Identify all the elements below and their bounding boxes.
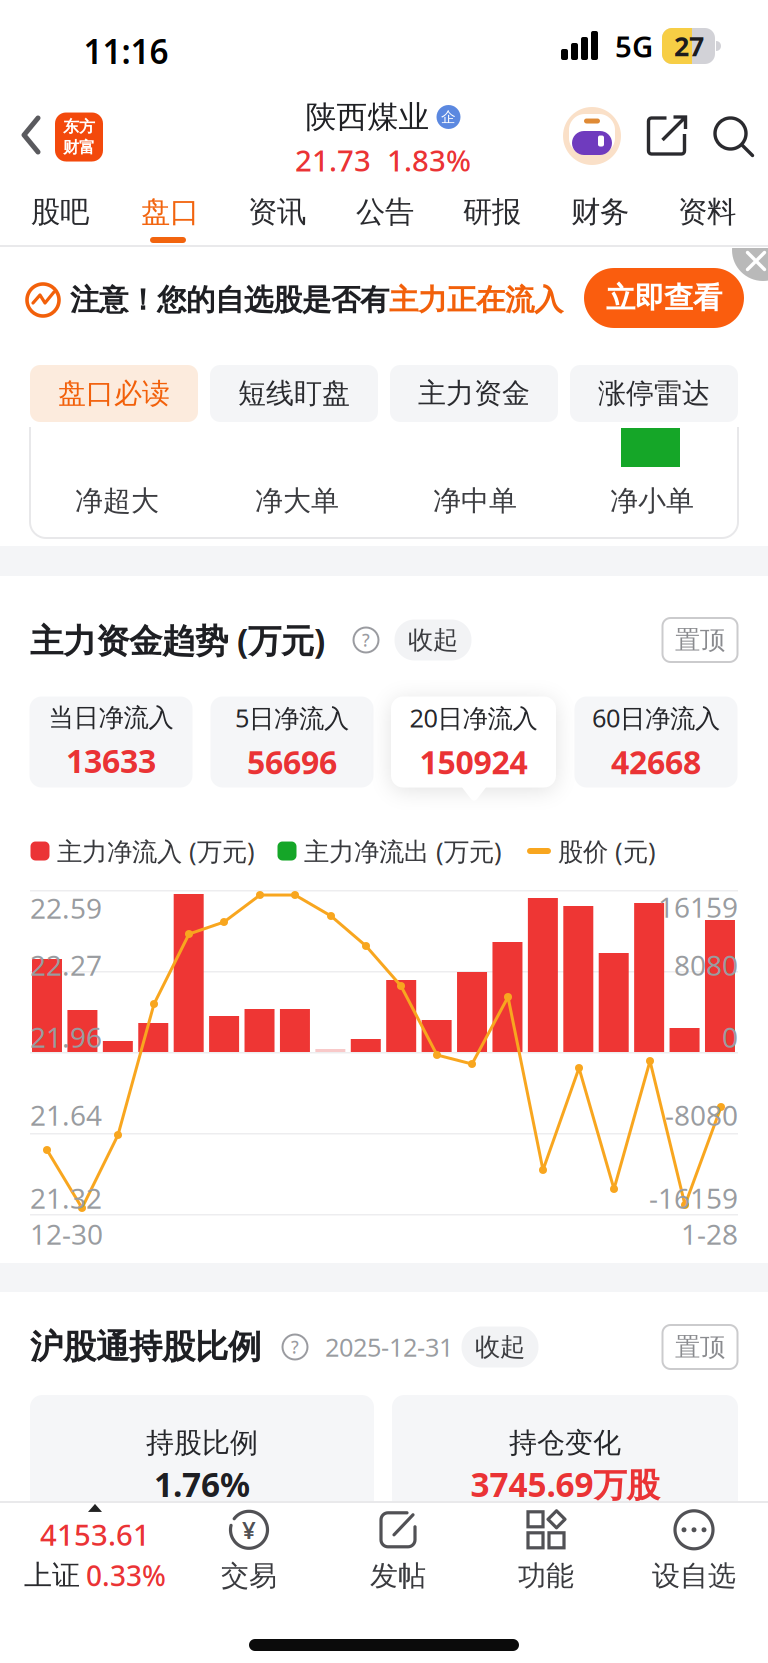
staticText: 沪股通持股比例 <box>30 1326 261 1367</box>
staticText: 东方 <box>63 117 95 136</box>
button[interactable]: Back <box>21 116 41 154</box>
staticText: 持股比例 <box>146 1426 258 1460</box>
button[interactable]: 4153.61 <box>24 1504 166 1594</box>
staticText: 3745.69万股 <box>470 1462 659 1506</box>
button[interactable]: 当日净流入 <box>29 696 192 787</box>
staticText: 研报 <box>463 194 521 230</box>
staticText: 16159 <box>658 888 738 926</box>
button[interactable]: 20日净流入 <box>391 696 556 787</box>
staticText: 4153.61 <box>40 1515 150 1554</box>
button[interactable]: 60日净流入 <box>574 696 737 787</box>
staticText: 0.33% <box>86 1557 166 1594</box>
staticText: 交易 <box>221 1559 277 1593</box>
staticText: 22.27 <box>30 946 102 984</box>
button[interactable]: 财务 <box>552 186 648 238</box>
staticText: 21.32 <box>30 1179 102 1217</box>
staticText: 5日净流入 <box>235 701 349 734</box>
button[interactable]: 股吧 <box>12 186 108 238</box>
button[interactable]: 置顶 <box>662 1325 737 1369</box>
staticText: 企 <box>441 108 456 126</box>
staticText: 短线盯盘 <box>238 376 350 411</box>
staticText: 56696 <box>247 741 337 783</box>
button[interactable]: 涨停雷达 <box>570 365 738 422</box>
button[interactable]: Close <box>732 219 768 281</box>
button[interactable]: Assistant <box>563 107 621 165</box>
button[interactable]: 立即查看 <box>584 268 744 328</box>
staticText: 功能 <box>518 1559 574 1593</box>
staticText: 立即查看 <box>606 280 722 316</box>
button[interactable]: 盘口必读 <box>30 365 198 422</box>
staticText: 主力资金趋势 (万元) <box>30 618 325 662</box>
button[interactable]: Search <box>713 116 754 157</box>
button[interactable]: Share <box>646 116 687 156</box>
button[interactable]: 设自选 <box>652 1509 736 1593</box>
staticText: 0 <box>722 1018 738 1056</box>
staticText: 涨停雷达 <box>598 376 710 411</box>
staticText: 当日净流入 <box>48 702 173 733</box>
staticText: 资讯 <box>248 194 306 230</box>
button[interactable]: 发帖 <box>370 1509 426 1593</box>
staticText: 2025-12-31 <box>325 1330 453 1364</box>
staticText: 150924 <box>419 741 527 783</box>
staticText: 资料 <box>678 194 736 230</box>
button[interactable]: 资料 <box>659 186 755 238</box>
staticText: 盘口必读 <box>58 376 170 411</box>
staticText: 股价 (元) <box>558 834 656 868</box>
staticText: -16159 <box>649 1179 738 1217</box>
staticText: 1-28 <box>681 1215 738 1253</box>
staticText: 收起 <box>475 1331 525 1362</box>
staticText: 11:16 <box>83 29 168 73</box>
staticText: 置顶 <box>675 1331 725 1362</box>
staticText: 12-30 <box>30 1215 103 1253</box>
button[interactable]: 5日净流入 <box>210 696 373 787</box>
staticText: 发帖 <box>370 1559 426 1593</box>
button[interactable]: 置顶 <box>662 618 737 662</box>
staticText: 净中单 <box>433 484 517 518</box>
button[interactable]: 公告 <box>337 186 433 238</box>
staticText: 设自选 <box>652 1559 736 1593</box>
staticText: -8080 <box>665 1096 738 1134</box>
staticText: 21.64 <box>30 1096 102 1134</box>
staticText: 主力净流出 (万元) <box>304 834 502 868</box>
staticText: 净小单 <box>610 484 694 518</box>
staticText: 20日净流入 <box>409 701 537 734</box>
staticText: 21.73 1.83% <box>295 140 471 179</box>
staticText: 主力资金 <box>418 376 530 411</box>
button[interactable]: 短线盯盘 <box>210 365 378 422</box>
staticText: ? <box>362 628 370 651</box>
button[interactable]: 盘口 <box>122 186 218 238</box>
button[interactable]: 研报 <box>444 186 540 238</box>
button[interactable]: 东方财富 <box>55 112 103 161</box>
button[interactable]: 主力资金 <box>390 365 558 422</box>
button[interactable]: ¥ <box>221 1509 277 1593</box>
staticText: 5G <box>615 26 653 65</box>
staticText: 财务 <box>571 194 629 230</box>
staticText: 60日净流入 <box>592 701 720 734</box>
staticText: 陕西煤业 <box>305 98 429 136</box>
staticText: 27 <box>674 28 704 64</box>
button[interactable]: 收起 <box>394 619 471 660</box>
staticText: 收起 <box>408 624 458 655</box>
staticText: 13633 <box>66 739 156 782</box>
staticText: 主力净流入 (万元) <box>57 834 255 868</box>
staticText: ¥ <box>242 1514 256 1546</box>
staticText: 注意！您的自选股是否有 <box>70 282 389 318</box>
staticText: 上证 <box>24 1558 80 1593</box>
staticText: 主力正在流入 <box>389 282 563 318</box>
staticText: 公告 <box>356 194 414 230</box>
staticText: 置顶 <box>675 624 725 655</box>
staticText: ? <box>291 1335 299 1358</box>
staticText: 盘口 <box>141 194 199 230</box>
button[interactable]: 功能 <box>518 1509 574 1593</box>
staticText: 持仓变化 <box>509 1426 621 1460</box>
staticText: 股吧 <box>31 194 89 230</box>
staticText: 8080 <box>674 946 738 984</box>
staticText: 21.96 <box>30 1018 102 1056</box>
staticText: 净超大 <box>75 484 159 518</box>
staticText: 22.59 <box>30 889 102 927</box>
staticText: 42668 <box>611 741 701 783</box>
button[interactable]: 收起 <box>461 1326 538 1367</box>
staticText: 1.76% <box>154 1462 250 1506</box>
staticText: 净大单 <box>255 484 339 518</box>
button[interactable]: 资讯 <box>229 186 325 238</box>
